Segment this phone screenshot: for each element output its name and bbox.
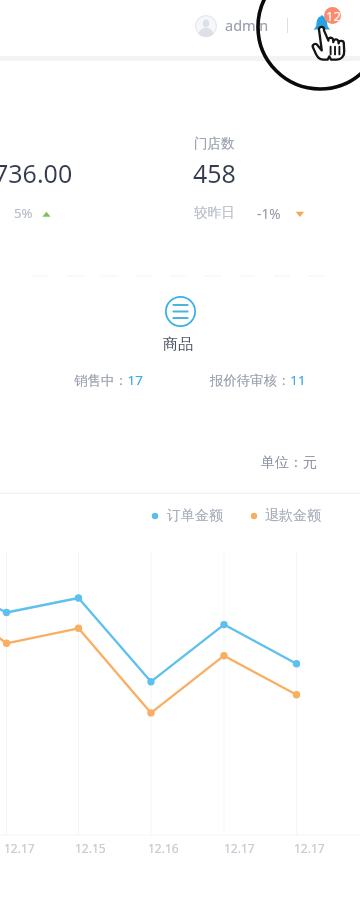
staticText: 销售中：17 bbox=[74, 371, 143, 389]
button[interactable]: Products bbox=[165, 296, 196, 327]
button[interactable]: Notifications bbox=[310, 12, 332, 34]
staticText: 订单金额 bbox=[167, 507, 223, 525]
staticText: 5% bbox=[14, 204, 33, 222]
staticText: 商品 bbox=[163, 335, 193, 354]
staticText: 报价待审核：11 bbox=[210, 371, 306, 389]
staticText: 736.00 bbox=[0, 156, 73, 190]
staticText: 12.17 bbox=[224, 840, 255, 856]
staticText: 单位：元 bbox=[261, 454, 317, 472]
staticText: 12 bbox=[326, 7, 341, 24]
button[interactable]: Account bbox=[195, 15, 217, 37]
staticText: 12.15 bbox=[75, 840, 106, 856]
staticText: -1% bbox=[257, 204, 281, 223]
staticText: 12.17 bbox=[294, 840, 325, 856]
staticText: 门店数 bbox=[194, 135, 235, 152]
staticText: 12.16 bbox=[148, 840, 179, 856]
staticText: 较昨日 bbox=[194, 204, 235, 221]
staticText: 退款金额 bbox=[265, 507, 321, 525]
staticText: 12.17 bbox=[4, 840, 35, 856]
button[interactable]: 销售中：17 bbox=[74, 371, 143, 389]
staticText: 458 bbox=[193, 156, 236, 190]
button[interactable]: 报价待审核：11 bbox=[210, 371, 306, 389]
staticText: admin bbox=[225, 15, 269, 35]
